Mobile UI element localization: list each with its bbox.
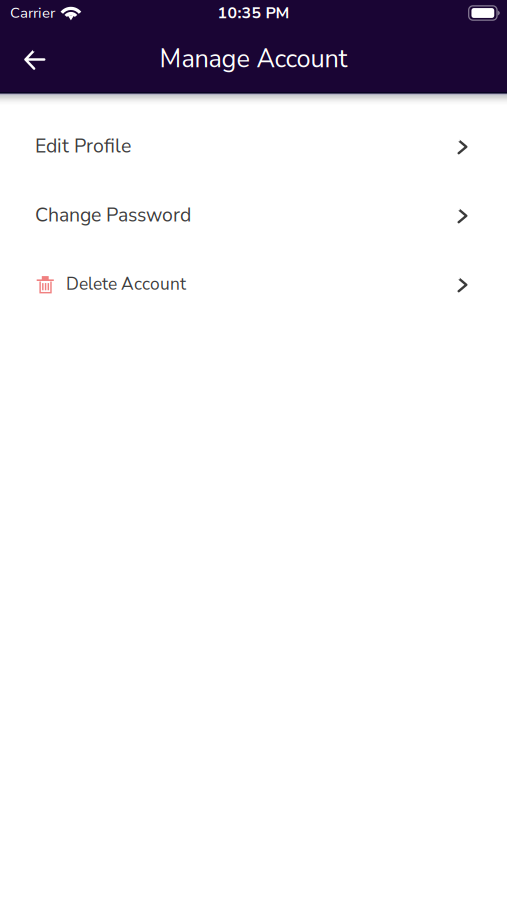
staticText: Edit Profile xyxy=(35,133,131,159)
staticText: Carrier xyxy=(10,3,55,23)
staticText: 10:35 PM xyxy=(217,2,289,24)
staticText: Delete Account xyxy=(66,272,186,296)
button[interactable]: Change Password xyxy=(0,180,507,249)
button[interactable]: Back xyxy=(0,36,59,82)
button[interactable]: Delete Account xyxy=(0,249,507,318)
staticText: Change Password xyxy=(35,202,191,228)
button[interactable]: Edit Profile xyxy=(0,111,507,180)
staticText: Manage Account xyxy=(159,42,347,76)
